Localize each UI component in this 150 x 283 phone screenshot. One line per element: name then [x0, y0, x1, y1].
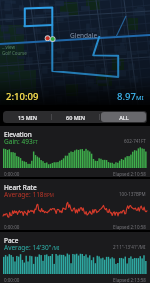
button[interactable]: 60 MIN [53, 112, 98, 122]
staticText: 2'11"-13'41"/MI [113, 244, 146, 250]
staticText: 0:00:00 [4, 224, 20, 230]
staticText: BPM [44, 192, 54, 198]
staticText: Heart Rate [4, 183, 37, 192]
staticText: Elapsed 2:13:58 [113, 277, 146, 283]
staticText: 2:10:09 [6, 90, 39, 103]
staticText: 15 MIN [18, 114, 37, 121]
staticText: Pace [4, 236, 19, 245]
button[interactable]: 15 MIN [4, 112, 50, 122]
staticText: Elevation [4, 130, 32, 139]
staticText: Gain: 493 [4, 137, 33, 146]
staticText: …view Golf Course [2, 44, 27, 56]
staticText: FT [33, 139, 38, 145]
staticText: /MI [52, 245, 60, 251]
staticText: 0:00:00 [4, 277, 20, 283]
staticText: Elapsed 2:10:58 [113, 224, 146, 230]
staticText: MI [136, 94, 144, 102]
staticText: 602-741FT [124, 138, 146, 144]
staticText: Average: 14'30" [4, 243, 52, 252]
staticText: ALL [119, 114, 129, 121]
staticText: 60 MIN [66, 114, 85, 121]
button[interactable]: ALL [101, 112, 146, 122]
staticText: 100-137BPM [119, 191, 146, 197]
staticText: Elapsed 2:10:58 [113, 171, 146, 177]
staticText: 0:00:00 [4, 171, 20, 177]
staticText: Average: 118 [4, 190, 44, 199]
staticText: Glendale [70, 31, 98, 40]
staticText: 8.97 [117, 90, 136, 103]
